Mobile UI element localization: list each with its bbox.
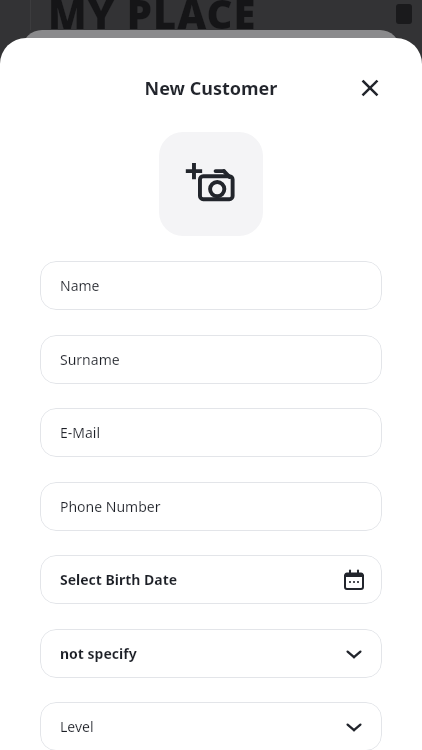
- button[interactable]: Select Birth Date: [40, 555, 382, 604]
- button[interactable]: E-Mail: [40, 408, 382, 457]
- staticText: Surname: [60, 350, 120, 369]
- staticText: New Customer: [0, 76, 422, 101]
- button[interactable]: Add photo: [159, 132, 263, 236]
- staticText: Name: [60, 276, 100, 295]
- button[interactable]: Name: [40, 261, 382, 310]
- staticText: Select Birth Date: [60, 570, 178, 589]
- button[interactable]: not specify: [40, 629, 382, 678]
- button[interactable]: Surname: [40, 335, 382, 384]
- staticText: Level: [60, 717, 94, 736]
- staticText: not specify: [60, 644, 137, 663]
- staticText: E-Mail: [60, 423, 101, 442]
- button[interactable]: Level: [40, 702, 382, 750]
- button[interactable]: Close: [352, 70, 388, 106]
- staticText: Phone Number: [60, 497, 161, 516]
- staticText: MY PLACE: [48, 0, 257, 40]
- button[interactable]: Phone Number: [40, 482, 382, 531]
